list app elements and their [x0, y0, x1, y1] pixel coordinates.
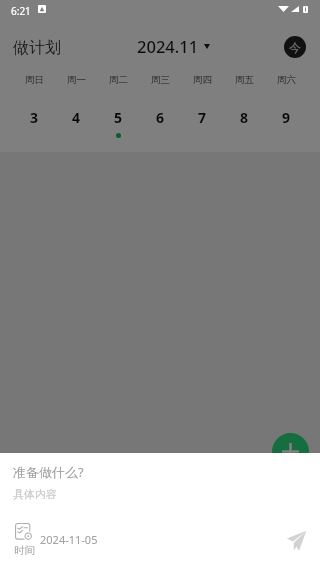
- button[interactable]: 4: [55, 92, 97, 152]
- button[interactable]: 7: [181, 92, 223, 152]
- staticText: 6: [156, 108, 165, 127]
- staticText: 今: [289, 40, 301, 55]
- staticText: 5: [114, 108, 123, 127]
- button[interactable]: 8: [223, 92, 265, 152]
- staticText: 6:21: [11, 4, 31, 18]
- staticText: 周五: [235, 74, 254, 86]
- button[interactable]: 准备做什么?: [13, 463, 84, 481]
- button[interactable]: Add: [272, 433, 309, 470]
- button[interactable]: 2024.11: [137, 35, 210, 57]
- staticText: 时间: [14, 544, 35, 557]
- staticText: 周一: [67, 74, 86, 86]
- staticText: 8: [240, 108, 249, 127]
- button[interactable]: Today: [284, 36, 306, 58]
- staticText: 3: [30, 108, 39, 127]
- staticText: 9: [282, 108, 291, 127]
- button[interactable]: 具体内容: [13, 487, 57, 501]
- button[interactable]: 6: [139, 92, 181, 152]
- button[interactable]: 3: [13, 92, 55, 152]
- button[interactable]: 9: [265, 92, 307, 152]
- staticText: 周三: [151, 74, 170, 86]
- staticText: 做计划: [13, 38, 61, 58]
- staticText: 2024-11-05: [40, 532, 98, 547]
- staticText: 周六: [277, 74, 296, 86]
- staticText: 2024.11: [137, 35, 199, 57]
- button[interactable]: 时间: [15, 523, 36, 557]
- staticText: 7: [198, 108, 207, 127]
- staticText: 4: [72, 108, 81, 127]
- staticText: 周二: [109, 74, 128, 86]
- staticText: 周日: [25, 74, 44, 86]
- staticText: 周四: [193, 74, 212, 86]
- button[interactable]: Send: [286, 530, 307, 551]
- button[interactable]: 5: [97, 92, 139, 152]
